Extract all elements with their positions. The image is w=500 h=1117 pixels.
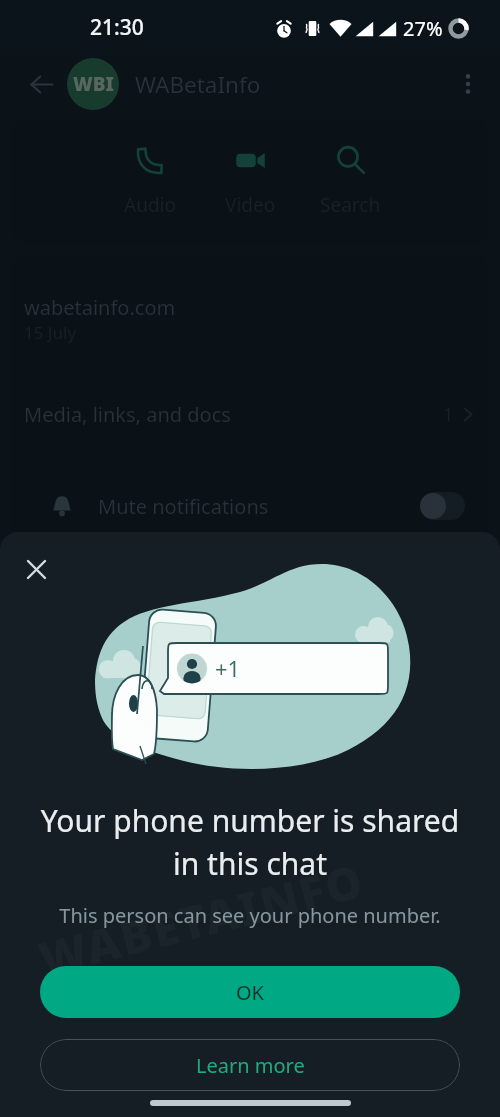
staticText: OK xyxy=(236,979,264,1006)
staticText: 1 xyxy=(443,402,454,427)
staticText: WBI xyxy=(73,71,114,97)
staticText: 15 July xyxy=(24,321,77,344)
button[interactable]: Learn more xyxy=(40,1039,460,1091)
button[interactable]: Media, links, and docs xyxy=(12,376,488,452)
staticText: Mute notifications xyxy=(98,493,269,520)
button[interactable]: Close xyxy=(14,547,58,591)
staticText: Your phone number is shared in this chat xyxy=(36,800,464,884)
staticText: Video xyxy=(225,192,276,218)
staticText: 21:30 xyxy=(90,13,144,42)
staticText: Learn more xyxy=(196,1052,305,1079)
button[interactable]: Audio xyxy=(100,135,200,228)
staticText: 27% xyxy=(403,15,443,42)
button[interactable]: Mute notifications xyxy=(12,468,488,544)
staticText: wabetainfo.com xyxy=(24,294,176,321)
staticText: Search xyxy=(320,192,381,218)
staticText: WABETAINFO xyxy=(32,848,372,990)
button[interactable]: OK xyxy=(40,966,460,1018)
staticText: Media, links, and docs xyxy=(24,401,231,428)
staticText: +1 xyxy=(215,653,241,683)
button[interactable]: Back xyxy=(19,62,63,106)
button[interactable]: Search xyxy=(300,135,400,228)
staticText: This person can see your phone number. xyxy=(59,902,441,929)
staticText: WABetaInfo xyxy=(135,69,261,100)
button[interactable]: More options xyxy=(446,62,490,106)
button[interactable]: Video xyxy=(200,135,300,228)
staticText: Audio xyxy=(124,192,176,218)
